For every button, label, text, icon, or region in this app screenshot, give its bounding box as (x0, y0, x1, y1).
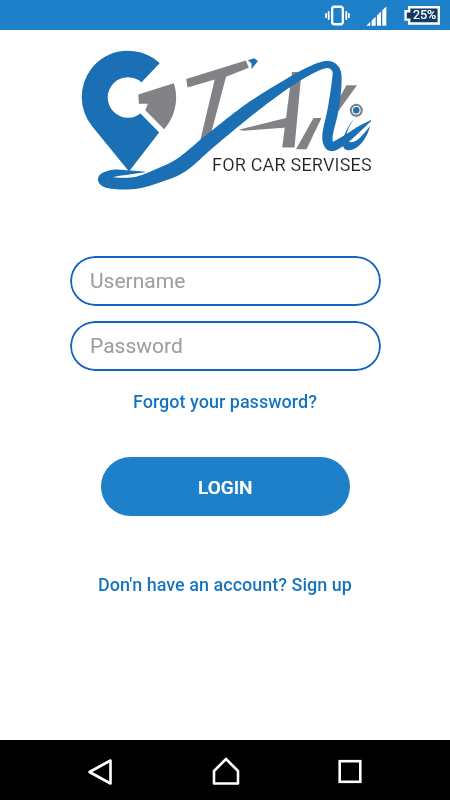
staticText: Username (90, 269, 186, 294)
button[interactable]: Password (70, 321, 381, 371)
staticText: 25% (413, 7, 437, 22)
button[interactable]: Don'n have an account? Sign up (94, 570, 356, 599)
staticText: FOR CAR SERVISES (212, 154, 372, 175)
button[interactable]: Forgot your password? (129, 387, 321, 416)
button[interactable]: LOGIN (101, 457, 350, 516)
staticText: LOGIN (198, 476, 253, 498)
button[interactable]: Home (190, 740, 262, 800)
staticText: Password (90, 334, 183, 359)
button[interactable]: Username (70, 256, 381, 306)
button[interactable]: Recent apps (314, 740, 386, 800)
button[interactable]: Back (64, 740, 136, 800)
